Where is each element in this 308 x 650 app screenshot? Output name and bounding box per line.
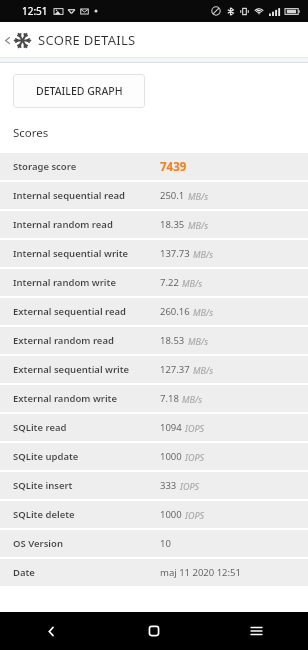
staticText: 1094 <box>160 421 182 434</box>
staticText: Storage score <box>13 160 160 173</box>
staticText: 18.35 <box>160 218 185 231</box>
button[interactable]: OS Version <box>0 530 308 557</box>
button[interactable]: SQLite delete <box>0 501 308 528</box>
button[interactable]: SQLite read <box>0 414 308 441</box>
staticText: 1000 <box>160 450 182 463</box>
button[interactable]: External random write <box>0 385 308 412</box>
staticText: External sequential write <box>13 363 160 376</box>
staticText: MB/s <box>193 364 214 376</box>
button[interactable]: Internal random write <box>0 269 308 296</box>
staticText: IOPS <box>180 480 200 492</box>
button[interactable]: Recent apps <box>205 612 308 650</box>
staticText: Internal random read <box>13 218 160 231</box>
button[interactable]: Internal sequential read <box>0 182 308 209</box>
staticText: 250.1 <box>160 189 185 202</box>
button[interactable]: Internal random read <box>0 211 308 238</box>
button[interactable]: SQLite update <box>0 443 308 470</box>
staticText: 18.53 <box>160 334 185 347</box>
button[interactable]: Back <box>0 612 102 650</box>
staticText: SQLite read <box>13 421 160 434</box>
button[interactable]: Internal sequential write <box>0 240 308 267</box>
staticText: 12:51 <box>22 4 48 18</box>
button[interactable]: Storage score <box>0 153 308 180</box>
staticText: 10 <box>160 537 171 550</box>
staticText: 7.18 <box>160 392 179 405</box>
staticText: 260.16 <box>160 305 190 318</box>
staticText: 7439 <box>160 159 187 175</box>
staticText: maj 11 2020 12:51 <box>160 566 241 579</box>
staticText: SQLite update <box>13 450 160 463</box>
staticText: External random read <box>13 334 160 347</box>
button[interactable]: DETAILED GRAPH <box>13 74 145 108</box>
staticText: Internal random write <box>13 276 160 289</box>
staticText: External sequential read <box>13 305 160 318</box>
staticText: External random write <box>13 392 160 405</box>
staticText: DETAILED GRAPH <box>36 84 123 98</box>
staticText: Internal sequential read <box>13 189 160 202</box>
button[interactable]: Date <box>0 559 308 586</box>
staticText: Scores <box>13 125 49 141</box>
staticText: MB/s <box>188 219 209 231</box>
button[interactable]: SQLite insert <box>0 472 308 499</box>
staticText: SCORE DETAILS <box>38 31 136 49</box>
staticText: 1000 <box>160 508 182 521</box>
button[interactable]: External sequential read <box>0 298 308 325</box>
button[interactable]: Back <box>0 22 14 58</box>
staticText: MB/s <box>193 306 214 318</box>
button[interactable]: External random read <box>0 327 308 354</box>
staticText: 137.73 <box>160 247 190 260</box>
staticText: 333 <box>160 479 177 492</box>
staticText: IOPS <box>185 509 205 521</box>
staticText: Date <box>13 566 160 579</box>
staticText: MB/s <box>193 248 214 260</box>
staticText: 127.37 <box>160 363 190 376</box>
staticText: OS Version <box>13 537 160 550</box>
staticText: SQLite delete <box>13 508 160 521</box>
button[interactable]: Home <box>102 612 205 650</box>
staticText: IOPS <box>185 451 205 463</box>
button[interactable]: External sequential write <box>0 356 308 383</box>
staticText: MB/s <box>182 277 203 289</box>
staticText: MB/s <box>188 190 209 202</box>
staticText: IOPS <box>185 422 205 434</box>
staticText: Internal sequential write <box>13 247 160 260</box>
staticText: MB/s <box>188 335 209 347</box>
staticText: SQLite insert <box>13 479 160 492</box>
staticText: 7.22 <box>160 276 179 289</box>
staticText: MB/s <box>182 393 203 405</box>
